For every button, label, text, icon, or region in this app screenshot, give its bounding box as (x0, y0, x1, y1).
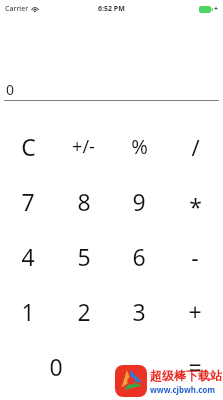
button[interactable]: / (167, 119, 223, 174)
staticText: * (189, 191, 202, 222)
staticText: 4 (21, 241, 35, 272)
button[interactable]: 4 (0, 229, 56, 284)
other: Wi-Fi signal (31, 5, 39, 13)
button[interactable]: 5 (56, 229, 111, 284)
staticText: C (21, 131, 36, 162)
button[interactable]: +/- (56, 119, 111, 174)
button[interactable]: 1 (0, 284, 56, 339)
staticText: 9 (132, 186, 146, 217)
button[interactable]: 3 (111, 284, 167, 339)
button[interactable]: 6 (111, 229, 167, 284)
button[interactable]: 0 (6, 80, 217, 98)
button[interactable]: C (0, 119, 56, 174)
staticText: = (188, 351, 202, 382)
staticText: 5 (77, 241, 91, 272)
staticText: www.cjbwh.com (150, 384, 216, 395)
button[interactable]: - (167, 229, 223, 284)
staticText: Carrier (5, 4, 29, 14)
staticText: - (191, 241, 199, 272)
staticText: 6 (132, 241, 146, 272)
button[interactable]: 7 (0, 174, 56, 229)
staticText: 8 (77, 186, 91, 217)
button[interactable]: * (167, 174, 223, 229)
staticText: 2 (77, 296, 91, 327)
button[interactable]: 8 (56, 174, 111, 229)
staticText: + (188, 296, 202, 327)
button[interactable]: 2 (56, 284, 111, 339)
button[interactable]: % (111, 119, 167, 174)
staticText: 超级棒下载站 (150, 368, 222, 383)
staticText: / (191, 132, 200, 162)
staticText: 1 (21, 296, 35, 327)
staticText: % (131, 133, 148, 160)
staticText: 3 (132, 296, 146, 327)
staticText: +/- (72, 134, 95, 159)
button[interactable]: + (167, 284, 223, 339)
staticText: 6:52 PM (98, 4, 125, 14)
staticText: + (214, 4, 219, 14)
staticText: 7 (21, 186, 35, 217)
button[interactable]: 9 (111, 174, 167, 229)
staticText: 0 (49, 351, 63, 382)
button[interactable]: = (167, 339, 223, 394)
button[interactable]: 0 (0, 339, 111, 394)
staticText: 0 (6, 80, 15, 98)
other: Battery charging (199, 6, 213, 13)
